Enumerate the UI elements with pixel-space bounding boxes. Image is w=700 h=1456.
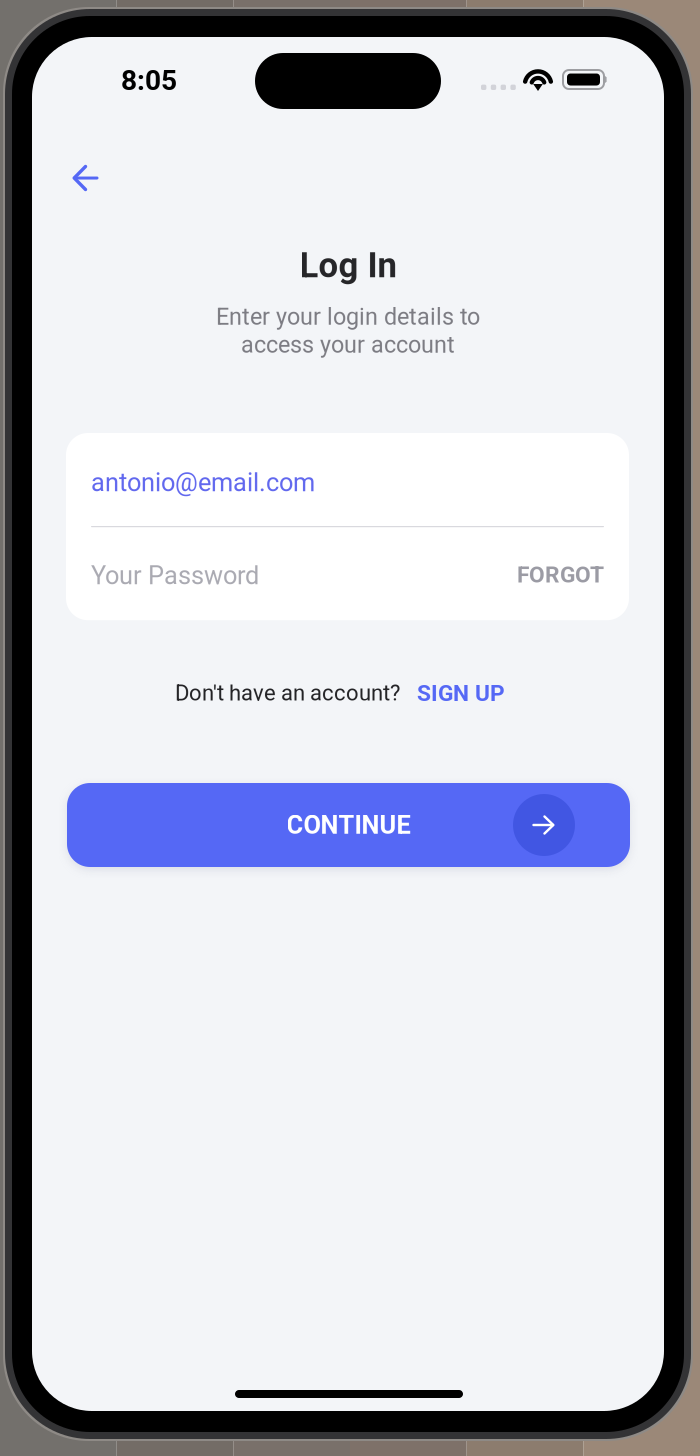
staticText: Log In [299, 245, 396, 286]
button[interactable]: SIGN UP [411, 674, 511, 713]
staticText: Enter your login details to [216, 303, 480, 330]
staticText: FORGOT [517, 561, 604, 588]
button[interactable]: Back [52, 147, 118, 209]
staticText: Your Password [91, 561, 259, 591]
button[interactable]: antonio@email.com [66, 433, 629, 526]
staticText: Don't have an account? [175, 680, 400, 706]
staticText: 8:05 [121, 64, 177, 97]
button[interactable]: CONTINUE [67, 783, 630, 867]
staticText: access your account [241, 331, 455, 358]
staticText: CONTINUE [286, 810, 410, 840]
button[interactable]: Your Password [66, 527, 629, 620]
staticText: SIGN UP [417, 680, 505, 707]
staticText: antonio@email.com [91, 468, 315, 497]
